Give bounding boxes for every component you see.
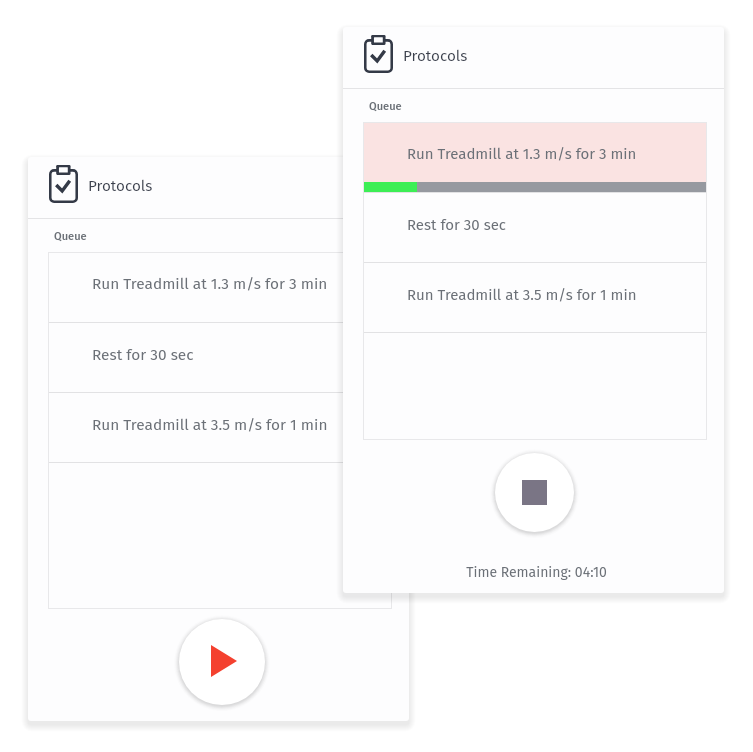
staticText: Run Treadmill at 3.5 m/s for 1 min bbox=[92, 416, 328, 434]
staticText: Queue bbox=[54, 230, 87, 243]
staticText: Run Treadmill at 3.5 m/s for 1 min bbox=[407, 286, 637, 304]
staticText: Run Treadmill at 1.3 m/s for 3 min bbox=[407, 145, 637, 163]
button[interactable]: Run Treadmill at 1.3 m/s for 3 min bbox=[48, 252, 392, 322]
staticText: Protocols bbox=[88, 177, 153, 195]
staticText: Time Remaining: 04:10 bbox=[346, 564, 724, 581]
button[interactable]: Protocols bbox=[343, 27, 724, 89]
button[interactable]: Play bbox=[179, 619, 265, 705]
button[interactable]: Stop bbox=[495, 453, 574, 532]
staticText: Rest for 30 sec bbox=[92, 346, 194, 364]
button[interactable]: Rest for 30 sec bbox=[363, 193, 707, 262]
button[interactable]: Run Treadmill at 3.5 m/s for 1 min bbox=[48, 393, 392, 462]
staticText: Run Treadmill at 1.3 m/s for 3 min bbox=[92, 275, 328, 293]
button[interactable]: Run Treadmill at 1.3 m/s for 3 min bbox=[363, 122, 707, 192]
button[interactable]: Run Treadmill at 3.5 m/s for 1 min bbox=[363, 263, 707, 332]
staticText: Protocols bbox=[403, 47, 468, 65]
button[interactable]: Protocols bbox=[28, 157, 409, 219]
button[interactable]: Rest for 30 sec bbox=[48, 323, 392, 392]
staticText: Rest for 30 sec bbox=[407, 216, 507, 234]
staticText: Queue bbox=[369, 100, 402, 113]
